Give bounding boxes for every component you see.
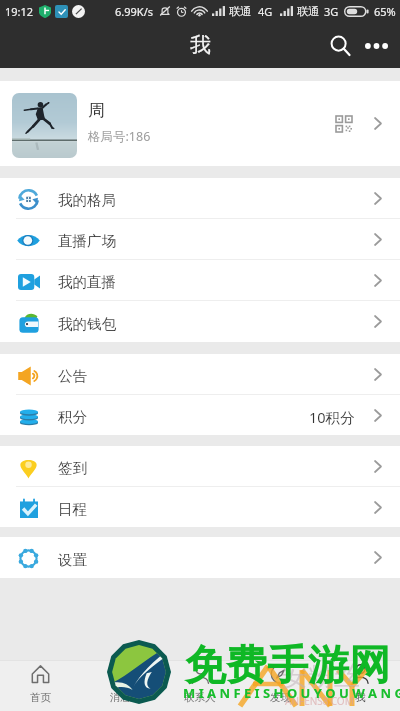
button[interactable]: 直播广场 [0, 219, 400, 259]
staticText: 签到 [58, 459, 87, 477]
staticText: 直播广场 [58, 232, 116, 250]
staticText: 我 [355, 691, 366, 704]
button[interactable]: 我的钱包 [0, 301, 400, 342]
button[interactable]: 积分 [0, 395, 400, 435]
button[interactable]: QR code [331, 111, 357, 137]
button[interactable]: More options [360, 29, 393, 62]
staticText: 我的钱包 [58, 315, 116, 333]
button[interactable]: 公告 [0, 354, 400, 394]
button[interactable]: 消息 [80, 661, 160, 711]
staticText: 日程 [58, 500, 87, 518]
staticText: 消息 [110, 691, 131, 704]
button[interactable]: 我的直播 [0, 260, 400, 300]
staticText: 我的格局 [58, 191, 116, 209]
staticText: 周 [88, 100, 105, 121]
staticText: M I A N F E I S H O U Y O U W A N G [183, 684, 400, 702]
staticText: ANFENS8.COM [285, 694, 354, 708]
staticText: 6.99K/s [115, 4, 153, 19]
staticText: 联通 [229, 4, 251, 18]
button[interactable]: 周 [0, 81, 400, 166]
staticText: 安粉丝 [282, 660, 360, 693]
staticText: 格局号:186 [88, 128, 151, 145]
staticText: 联系人 [184, 691, 216, 704]
button[interactable]: 设置 [0, 537, 400, 578]
button[interactable]: 发现 [240, 661, 320, 711]
staticText: 3G [324, 4, 339, 19]
staticText: 10积分 [309, 407, 355, 427]
staticText: 4G [258, 4, 273, 19]
staticText: 联通 [297, 4, 319, 18]
button[interactable]: 日程 [0, 487, 400, 527]
staticText: 首页 [30, 691, 51, 704]
button[interactable]: 首页 [0, 661, 80, 711]
staticText: 积分 [58, 408, 87, 426]
button[interactable]: 签到 [0, 446, 400, 486]
staticText: 免费手游网 [185, 640, 390, 692]
staticText: 我的直播 [58, 273, 116, 291]
button[interactable]: 联系人 [160, 661, 240, 711]
button[interactable]: 我 [320, 661, 400, 711]
staticText: 发现 [270, 691, 291, 704]
button[interactable]: Search [325, 30, 356, 61]
button[interactable]: 我的格局 [0, 178, 400, 218]
staticText: 公告 [58, 367, 87, 385]
staticText: 我 [190, 32, 211, 58]
staticText: 设置 [58, 551, 87, 569]
staticText: 19:12 [5, 4, 34, 19]
staticText: 65% [374, 4, 396, 19]
